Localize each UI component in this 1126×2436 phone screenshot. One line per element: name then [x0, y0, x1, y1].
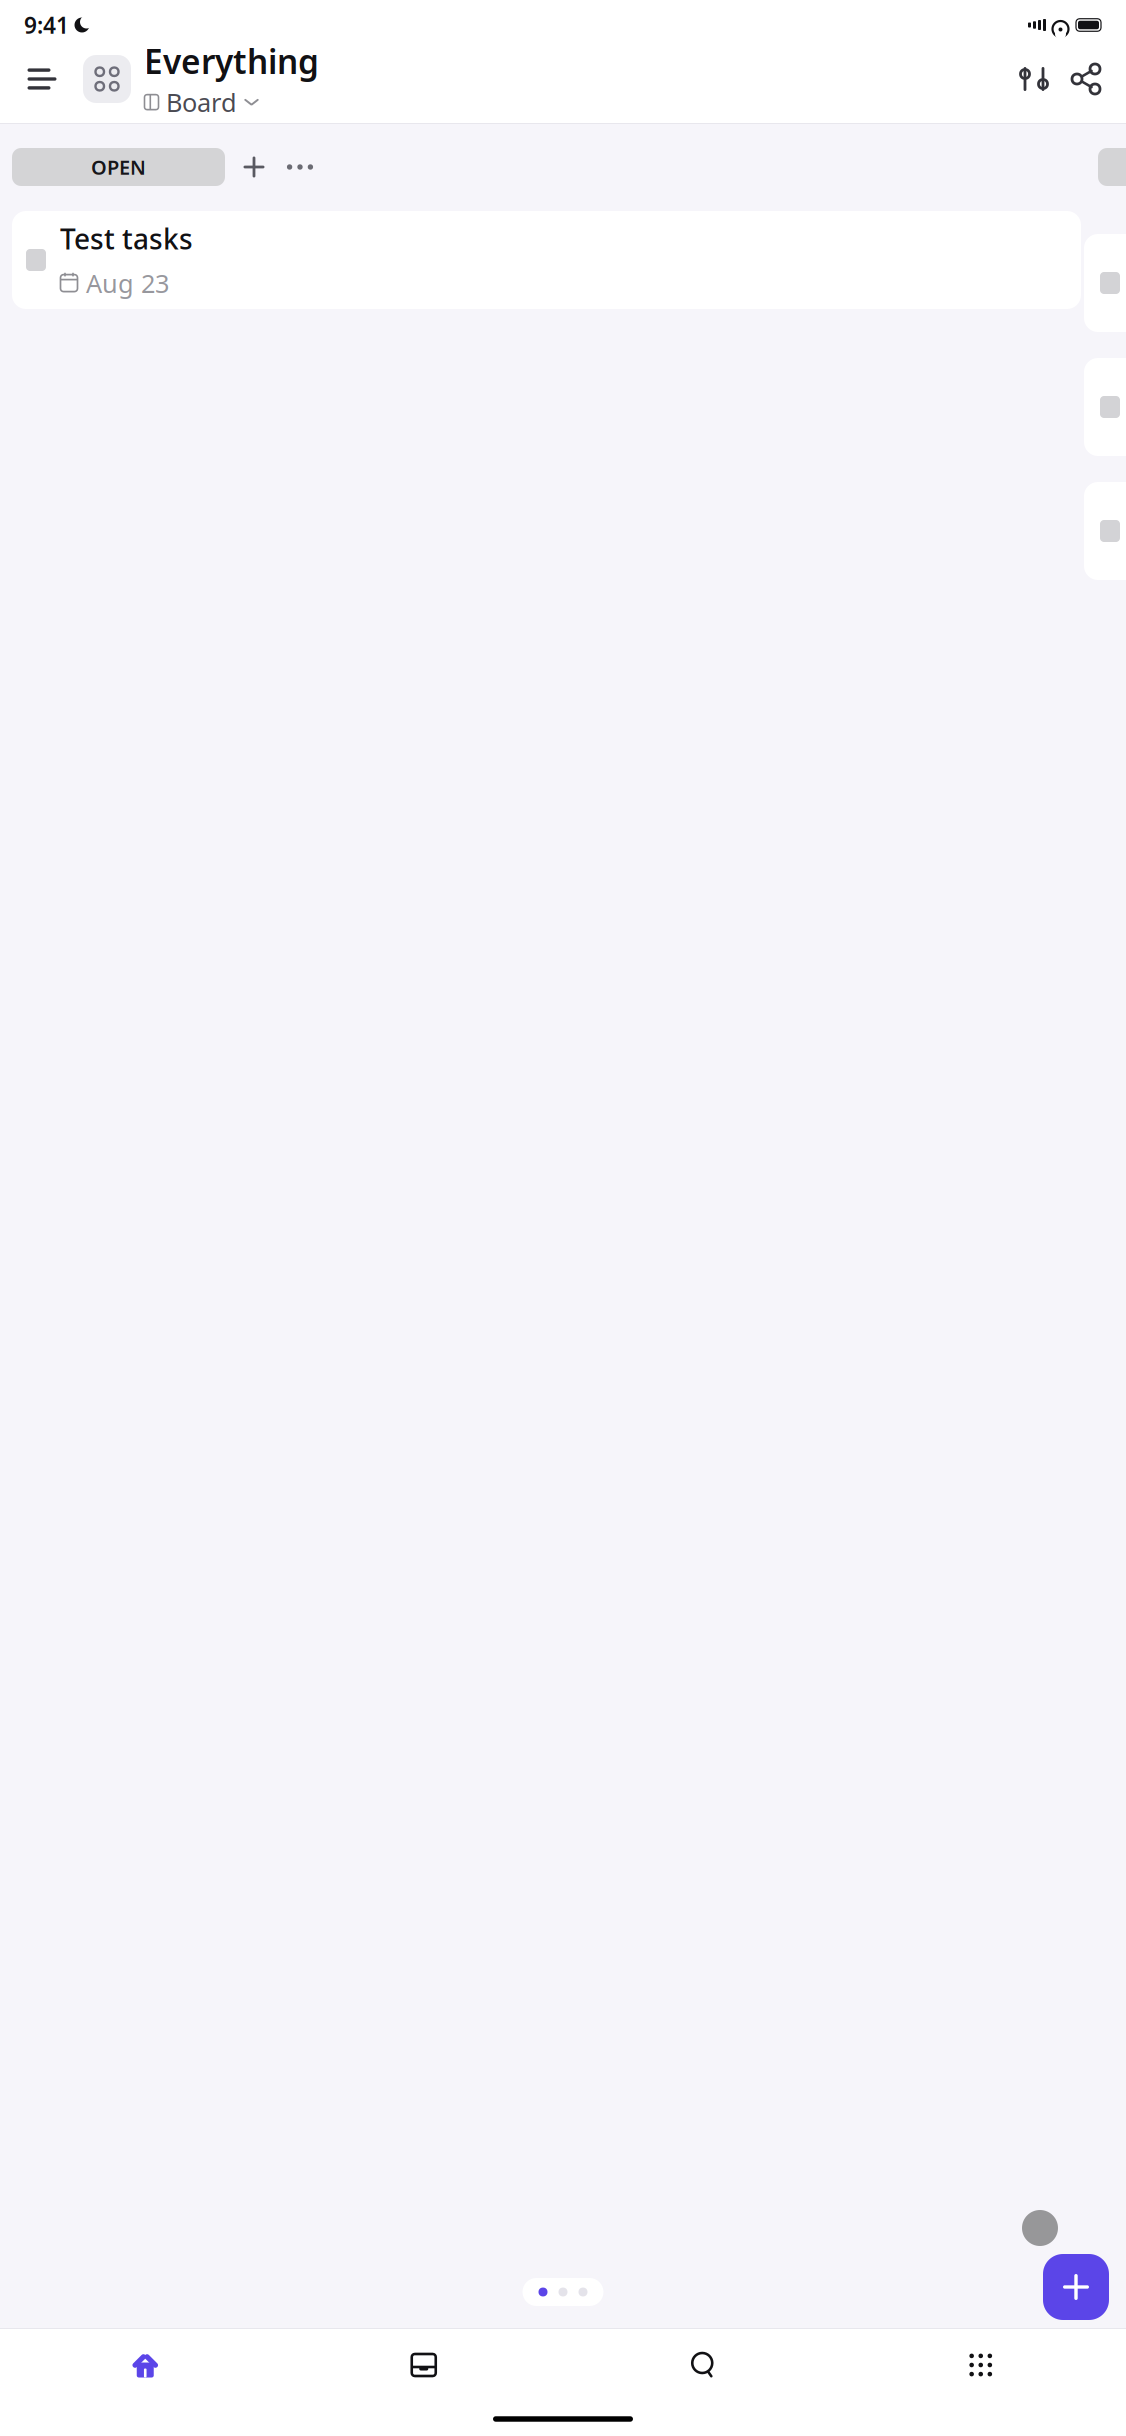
button[interactable]: Space icon [83, 55, 131, 103]
button[interactable]: More [841, 2336, 1120, 2394]
button[interactable]: Search [563, 2336, 841, 2394]
staticText: 9:41 [24, 10, 69, 40]
button[interactable]: Filters [1013, 58, 1055, 100]
button[interactable]: Home [6, 2336, 284, 2394]
button[interactable]: Account [1022, 2210, 1058, 2246]
button[interactable]: Create [1043, 2254, 1109, 2320]
button[interactable]: Add task to Open [232, 147, 276, 187]
staticText: Board [166, 85, 237, 119]
button[interactable]: Test tasks, due Aug 23 [12, 211, 1081, 309]
button[interactable]: OPEN [12, 148, 225, 186]
button[interactable]: Share [1065, 58, 1107, 100]
button[interactable]: Menu [19, 56, 65, 102]
button[interactable]: Open column options [278, 147, 322, 187]
staticText: Test tasks [60, 220, 193, 257]
staticText: Everything [144, 39, 319, 83]
button[interactable]: Everything, Board view [144, 39, 319, 119]
staticText: OPEN [91, 154, 146, 180]
button[interactable]: Inbox [284, 2336, 563, 2394]
staticText: Aug 23 [86, 266, 169, 300]
